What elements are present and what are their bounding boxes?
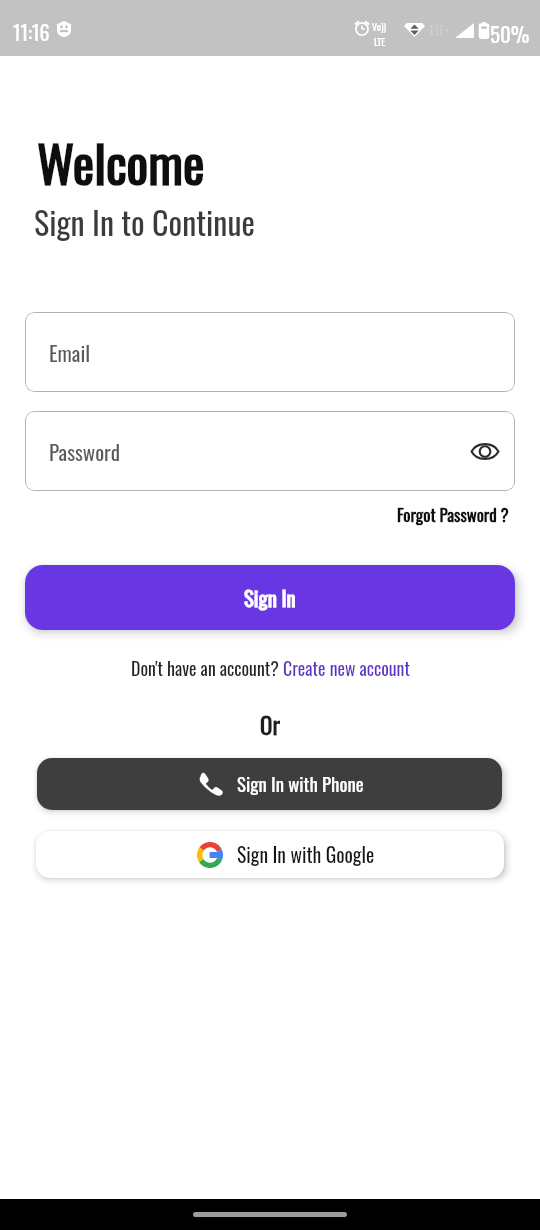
button[interactable]: Create new account [283,655,410,681]
staticText: Or [260,708,280,742]
staticText: Create new account [283,655,410,681]
staticText: Sign In with Phone [237,770,364,798]
button[interactable]: Forgot Password ? [397,502,509,527]
staticText: Password [49,436,121,467]
staticText: Sign In [244,582,296,613]
button[interactable]: Email [25,312,515,392]
staticText: 11:16 [13,17,50,47]
staticText: 50% [490,18,530,49]
button[interactable]: Sign In with Phone [37,758,502,810]
staticText: Sign In with Google [237,840,375,869]
staticText: Email [49,337,91,368]
staticText: LTE [374,34,386,49]
staticText: Don't have an account? [131,655,283,681]
staticText: LTE+ [430,20,451,39]
staticText: Welcome [37,124,205,200]
staticText: Sign In to Continue [34,198,255,245]
staticText: Forgot Password ? [397,502,509,527]
button[interactable]: Sign In with Google [36,831,504,878]
button[interactable]: Show password [471,442,499,461]
button[interactable]: Password [25,411,515,491]
staticText: Vo)) [372,19,387,34]
button[interactable]: Sign In [25,565,515,630]
